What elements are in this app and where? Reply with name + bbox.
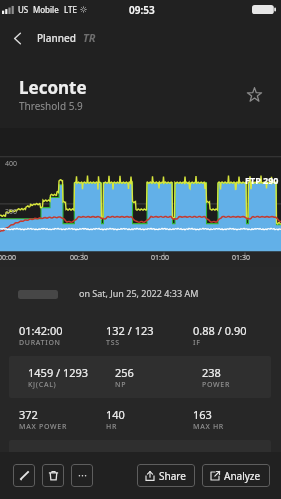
staticText: 200	[5, 207, 18, 217]
staticText: Share	[159, 469, 186, 483]
staticText: 01:30	[232, 253, 250, 263]
staticText: 00:00	[0, 253, 16, 263]
button[interactable]: Analyze	[202, 464, 270, 487]
staticText: 1459 / 1293	[28, 365, 89, 380]
staticText: on Sat, Jun 25, 2022 4:33 AM	[79, 287, 199, 299]
button[interactable]: Edit	[13, 464, 35, 487]
staticText: TSS	[106, 338, 120, 348]
staticText: 238	[202, 365, 221, 380]
staticText: NP	[115, 380, 127, 390]
staticText: 163	[193, 407, 212, 422]
staticText: HR	[106, 422, 118, 432]
button[interactable]: Favorite	[239, 79, 269, 109]
button[interactable]: Back	[0, 21, 34, 55]
staticText: Threshold 5.9	[19, 99, 83, 113]
staticText: Planned	[37, 31, 76, 45]
staticText: FTP 290	[245, 174, 279, 186]
staticText: Mobile	[33, 4, 59, 15]
staticText: 372	[19, 407, 38, 422]
staticText: IF	[193, 338, 201, 348]
staticText: Analyze	[224, 469, 261, 483]
staticText: MAX HR	[193, 422, 224, 432]
button[interactable]: More options	[71, 464, 93, 487]
staticText: 400	[5, 159, 18, 169]
staticText: TR	[83, 30, 96, 45]
staticText: 256	[115, 365, 134, 380]
staticText: 140	[106, 407, 125, 422]
staticText: MAX POWER	[19, 422, 68, 432]
staticText: Leconte	[19, 76, 87, 99]
staticText: LTE	[64, 4, 77, 15]
staticText: 01:42:00	[19, 323, 63, 338]
staticText: POWER	[202, 380, 231, 390]
staticText: 00:30	[70, 253, 88, 263]
staticText: US	[18, 4, 29, 15]
button[interactable]: Share	[137, 464, 195, 487]
staticText: 09:53	[129, 3, 155, 17]
staticText: KJ(CAL)	[28, 380, 57, 390]
staticText: DURATION	[19, 338, 61, 348]
staticText: 0.88 / 0.90	[193, 323, 247, 338]
staticText: 132 / 123	[106, 323, 154, 338]
button[interactable]: Delete	[42, 464, 64, 487]
staticText: 01:00	[151, 253, 169, 263]
